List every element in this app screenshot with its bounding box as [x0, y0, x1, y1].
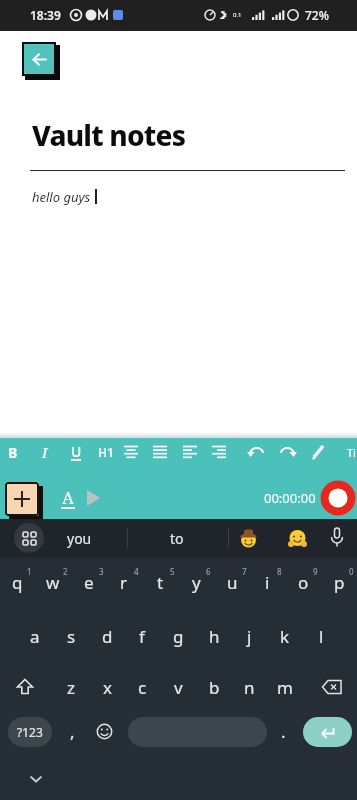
button[interactable] — [320, 480, 356, 516]
button[interactable] — [96, 723, 113, 740]
staticText: 5 — [170, 566, 175, 577]
button[interactable] — [182, 445, 198, 459]
staticText: you — [67, 529, 92, 548]
button[interactable]: d — [90, 621, 124, 651]
button[interactable] — [22, 42, 56, 76]
staticText: n — [244, 676, 255, 699]
staticText: hello guys — [32, 188, 91, 206]
button[interactable]: f — [125, 621, 159, 651]
button[interactable] — [288, 529, 307, 548]
staticText: y — [192, 571, 201, 594]
button[interactable]: I — [15, 440, 75, 464]
button[interactable] — [329, 527, 345, 549]
staticText: 9 — [313, 566, 318, 577]
button[interactable] — [303, 717, 352, 747]
button[interactable]: A — [38, 485, 98, 509]
staticText: i — [265, 571, 270, 594]
button[interactable]: t — [143, 567, 177, 597]
staticText: Vault notes — [32, 116, 186, 154]
button[interactable]: , — [42, 719, 102, 743]
button[interactable]: b — [197, 672, 231, 702]
button[interactable]: to — [147, 526, 207, 550]
staticText: to — [170, 529, 184, 548]
button[interactable]: c — [125, 672, 159, 702]
button[interactable] — [28, 774, 44, 784]
button[interactable]: x — [90, 672, 124, 702]
staticText: q — [12, 571, 23, 594]
staticText: x — [103, 676, 112, 699]
button[interactable] — [321, 679, 343, 695]
staticText: a — [30, 625, 40, 648]
button[interactable]: g — [161, 621, 195, 651]
staticText: 00:00:00 — [264, 489, 316, 507]
staticText: ?123 — [17, 724, 43, 740]
staticText: 72% — [305, 7, 329, 23]
button[interactable]: m — [268, 672, 302, 702]
staticText: , — [70, 720, 75, 743]
staticText: 2 — [63, 566, 68, 577]
button[interactable]: i — [250, 567, 284, 597]
button[interactable]: p — [322, 567, 356, 597]
staticText: l — [319, 625, 324, 648]
staticText: o — [298, 571, 309, 594]
staticText: 3 — [99, 566, 104, 577]
staticText: c — [138, 676, 147, 699]
staticText: 6 — [206, 566, 211, 577]
staticText: w — [46, 571, 60, 594]
button[interactable] — [239, 529, 258, 548]
button[interactable]: l — [304, 621, 338, 651]
staticText: p — [334, 571, 345, 594]
button[interactable]: n — [232, 672, 266, 702]
staticText: m — [277, 676, 293, 699]
staticText: j — [247, 625, 252, 648]
button[interactable] — [152, 445, 168, 459]
button[interactable]: e — [72, 567, 106, 597]
button[interactable]: h — [197, 621, 231, 651]
button[interactable]: a — [18, 621, 52, 651]
staticText: u — [227, 571, 238, 594]
button[interactable]: w — [36, 567, 70, 597]
staticText: d — [102, 625, 113, 648]
button[interactable]: o — [286, 567, 320, 597]
staticText: t — [157, 571, 164, 594]
staticText: b — [209, 676, 220, 699]
button[interactable]: . — [253, 719, 313, 743]
staticText: k — [280, 625, 290, 648]
button[interactable]: you — [49, 526, 109, 550]
button[interactable]: U — [46, 439, 106, 463]
staticText: B — [8, 443, 18, 462]
button[interactable]: v — [161, 672, 195, 702]
button[interactable] — [310, 443, 328, 461]
button[interactable]: ?123 — [8, 717, 52, 747]
button[interactable] — [14, 523, 44, 553]
button[interactable]: u — [215, 567, 249, 597]
staticText: 4 — [134, 566, 139, 577]
staticText: z — [67, 676, 75, 699]
staticText: e — [84, 571, 94, 594]
button[interactable] — [277, 444, 297, 460]
button[interactable]: q — [0, 567, 34, 597]
staticText: g — [173, 625, 184, 648]
button[interactable] — [5, 482, 39, 516]
staticText: 18:39 — [30, 7, 61, 23]
button[interactable]: s — [54, 621, 88, 651]
button[interactable]: r — [107, 567, 141, 597]
button[interactable] — [85, 490, 101, 506]
staticText: . — [281, 720, 286, 743]
button[interactable]: k — [268, 621, 302, 651]
button[interactable]: j — [232, 621, 266, 651]
staticText: 0 — [349, 566, 354, 577]
button[interactable]: y — [179, 567, 213, 597]
button[interactable] — [211, 445, 227, 459]
button[interactable]: Ti — [321, 440, 357, 464]
button[interactable] — [128, 717, 267, 747]
button[interactable] — [15, 678, 35, 696]
staticText: v — [174, 676, 183, 699]
button[interactable]: H1 — [76, 440, 136, 464]
button[interactable] — [123, 445, 139, 459]
button[interactable] — [247, 444, 267, 460]
button[interactable]: z — [54, 672, 88, 702]
staticText: 0.1 — [233, 11, 242, 19]
staticText: H1 — [98, 444, 114, 460]
button[interactable]: B — [0, 440, 43, 464]
